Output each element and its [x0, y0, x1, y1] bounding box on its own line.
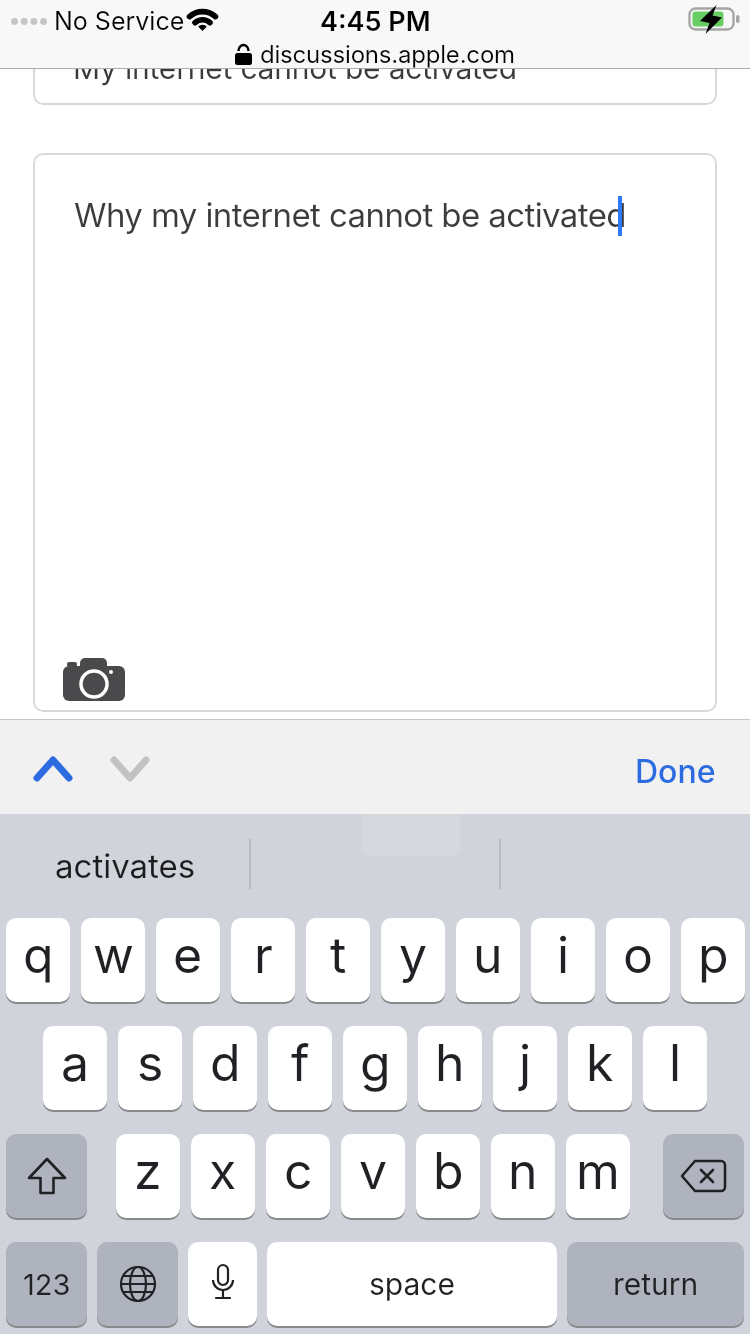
- staticText: z: [134, 1141, 162, 1201]
- staticText: f: [291, 1033, 310, 1093]
- staticText: v: [359, 1141, 388, 1201]
- staticText: n: [508, 1141, 538, 1201]
- button[interactable]: d: [193, 1026, 257, 1110]
- staticText: d: [210, 1033, 241, 1093]
- button[interactable]: y: [381, 918, 445, 1002]
- staticText: return: [613, 1266, 699, 1302]
- button[interactable]: c: [266, 1134, 330, 1218]
- staticText: 123: [23, 1267, 71, 1302]
- button[interactable]: g: [343, 1026, 407, 1110]
- staticText: j: [519, 1033, 532, 1093]
- button[interactable]: m: [566, 1134, 630, 1218]
- button[interactable]: n: [491, 1134, 555, 1218]
- button[interactable]: discussions.apple.com: [0, 40, 750, 68]
- button[interactable]: return: [567, 1242, 744, 1326]
- staticText: b: [433, 1141, 464, 1201]
- staticText: No Service: [54, 6, 185, 36]
- button[interactable]: v: [341, 1134, 405, 1218]
- staticText: 4:45 PM: [320, 5, 431, 38]
- button[interactable]: u: [456, 918, 520, 1002]
- button[interactable]: [63, 655, 127, 703]
- staticText: My internet cannot be activated: [73, 50, 517, 86]
- button[interactable]: [30, 752, 76, 782]
- staticText: u: [473, 925, 503, 985]
- staticText: a: [61, 1033, 90, 1093]
- button[interactable]: h: [418, 1026, 482, 1110]
- staticText: k: [586, 1033, 614, 1093]
- button[interactable]: [188, 1242, 257, 1326]
- button[interactable]: b: [416, 1134, 480, 1218]
- button[interactable]: space: [267, 1242, 557, 1326]
- button[interactable]: z: [116, 1134, 180, 1218]
- button[interactable]: f: [268, 1026, 332, 1110]
- button[interactable]: x: [191, 1134, 255, 1218]
- button[interactable]: k: [568, 1026, 632, 1110]
- button[interactable]: i: [531, 918, 595, 1002]
- button[interactable]: q: [6, 918, 70, 1002]
- staticText: Why my internet cannot be activated: [74, 195, 626, 235]
- button[interactable]: l: [643, 1026, 707, 1110]
- staticText: q: [23, 925, 54, 985]
- button[interactable]: [97, 1242, 178, 1326]
- button[interactable]: [33, 28, 717, 105]
- button[interactable]: p: [681, 918, 745, 1002]
- staticText: h: [435, 1033, 465, 1093]
- staticText: e: [173, 925, 203, 985]
- staticText: activates: [55, 846, 196, 886]
- staticText: c: [284, 1141, 313, 1201]
- button[interactable]: j: [493, 1026, 557, 1110]
- staticText: i: [557, 925, 570, 985]
- staticText: x: [209, 1141, 237, 1201]
- button[interactable]: a: [43, 1026, 107, 1110]
- button[interactable]: [6, 1134, 87, 1218]
- staticText: o: [623, 925, 653, 985]
- staticText: p: [698, 925, 729, 985]
- staticText: r: [254, 925, 273, 985]
- button[interactable]: [107, 752, 153, 782]
- button[interactable]: r: [231, 918, 295, 1002]
- button[interactable]: Done: [600, 748, 720, 794]
- staticText: g: [360, 1033, 391, 1093]
- staticText: m: [576, 1141, 620, 1201]
- staticText: s: [137, 1033, 164, 1093]
- button[interactable]: t: [306, 918, 370, 1002]
- button[interactable]: e: [156, 918, 220, 1002]
- staticText: l: [669, 1033, 682, 1093]
- button[interactable]: o: [606, 918, 670, 1002]
- button[interactable]: [663, 1134, 744, 1218]
- staticText: Done: [635, 752, 716, 791]
- button[interactable]: s: [118, 1026, 182, 1110]
- staticText: discussions.apple.com: [260, 40, 515, 68]
- button[interactable]: activates: [0, 814, 250, 918]
- staticText: t: [330, 925, 347, 985]
- staticText: w: [93, 925, 134, 985]
- button[interactable]: [33, 153, 717, 712]
- button[interactable]: 123: [6, 1242, 87, 1326]
- staticText: space: [369, 1266, 455, 1302]
- button[interactable]: w: [81, 918, 145, 1002]
- staticText: y: [399, 925, 428, 985]
